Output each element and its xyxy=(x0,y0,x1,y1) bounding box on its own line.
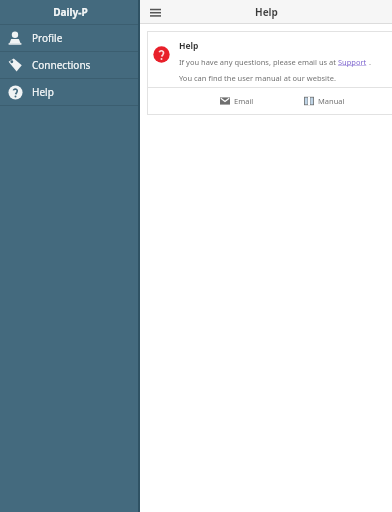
button[interactable]: Help xyxy=(0,79,140,105)
staticText: Daily-P xyxy=(53,5,88,19)
staticText: Manual xyxy=(318,96,345,106)
staticText: Help xyxy=(32,85,54,99)
button[interactable]: Connections xyxy=(0,52,140,78)
staticText: You can find the user manual at our webs… xyxy=(179,73,337,83)
staticText: If you have any questions, please email … xyxy=(179,57,338,67)
button[interactable]: Email xyxy=(217,92,257,110)
button[interactable]: Open navigation menu xyxy=(146,3,164,21)
staticText: Help xyxy=(179,40,199,52)
staticText: Email xyxy=(234,96,254,106)
staticText: . xyxy=(367,57,371,67)
button[interactable]: Support xyxy=(338,57,367,67)
staticText: Profile xyxy=(32,31,63,45)
staticText: Connections xyxy=(32,58,91,72)
button[interactable]: Profile xyxy=(0,25,140,51)
staticText: Help xyxy=(255,5,278,19)
button[interactable]: Manual xyxy=(301,92,348,110)
